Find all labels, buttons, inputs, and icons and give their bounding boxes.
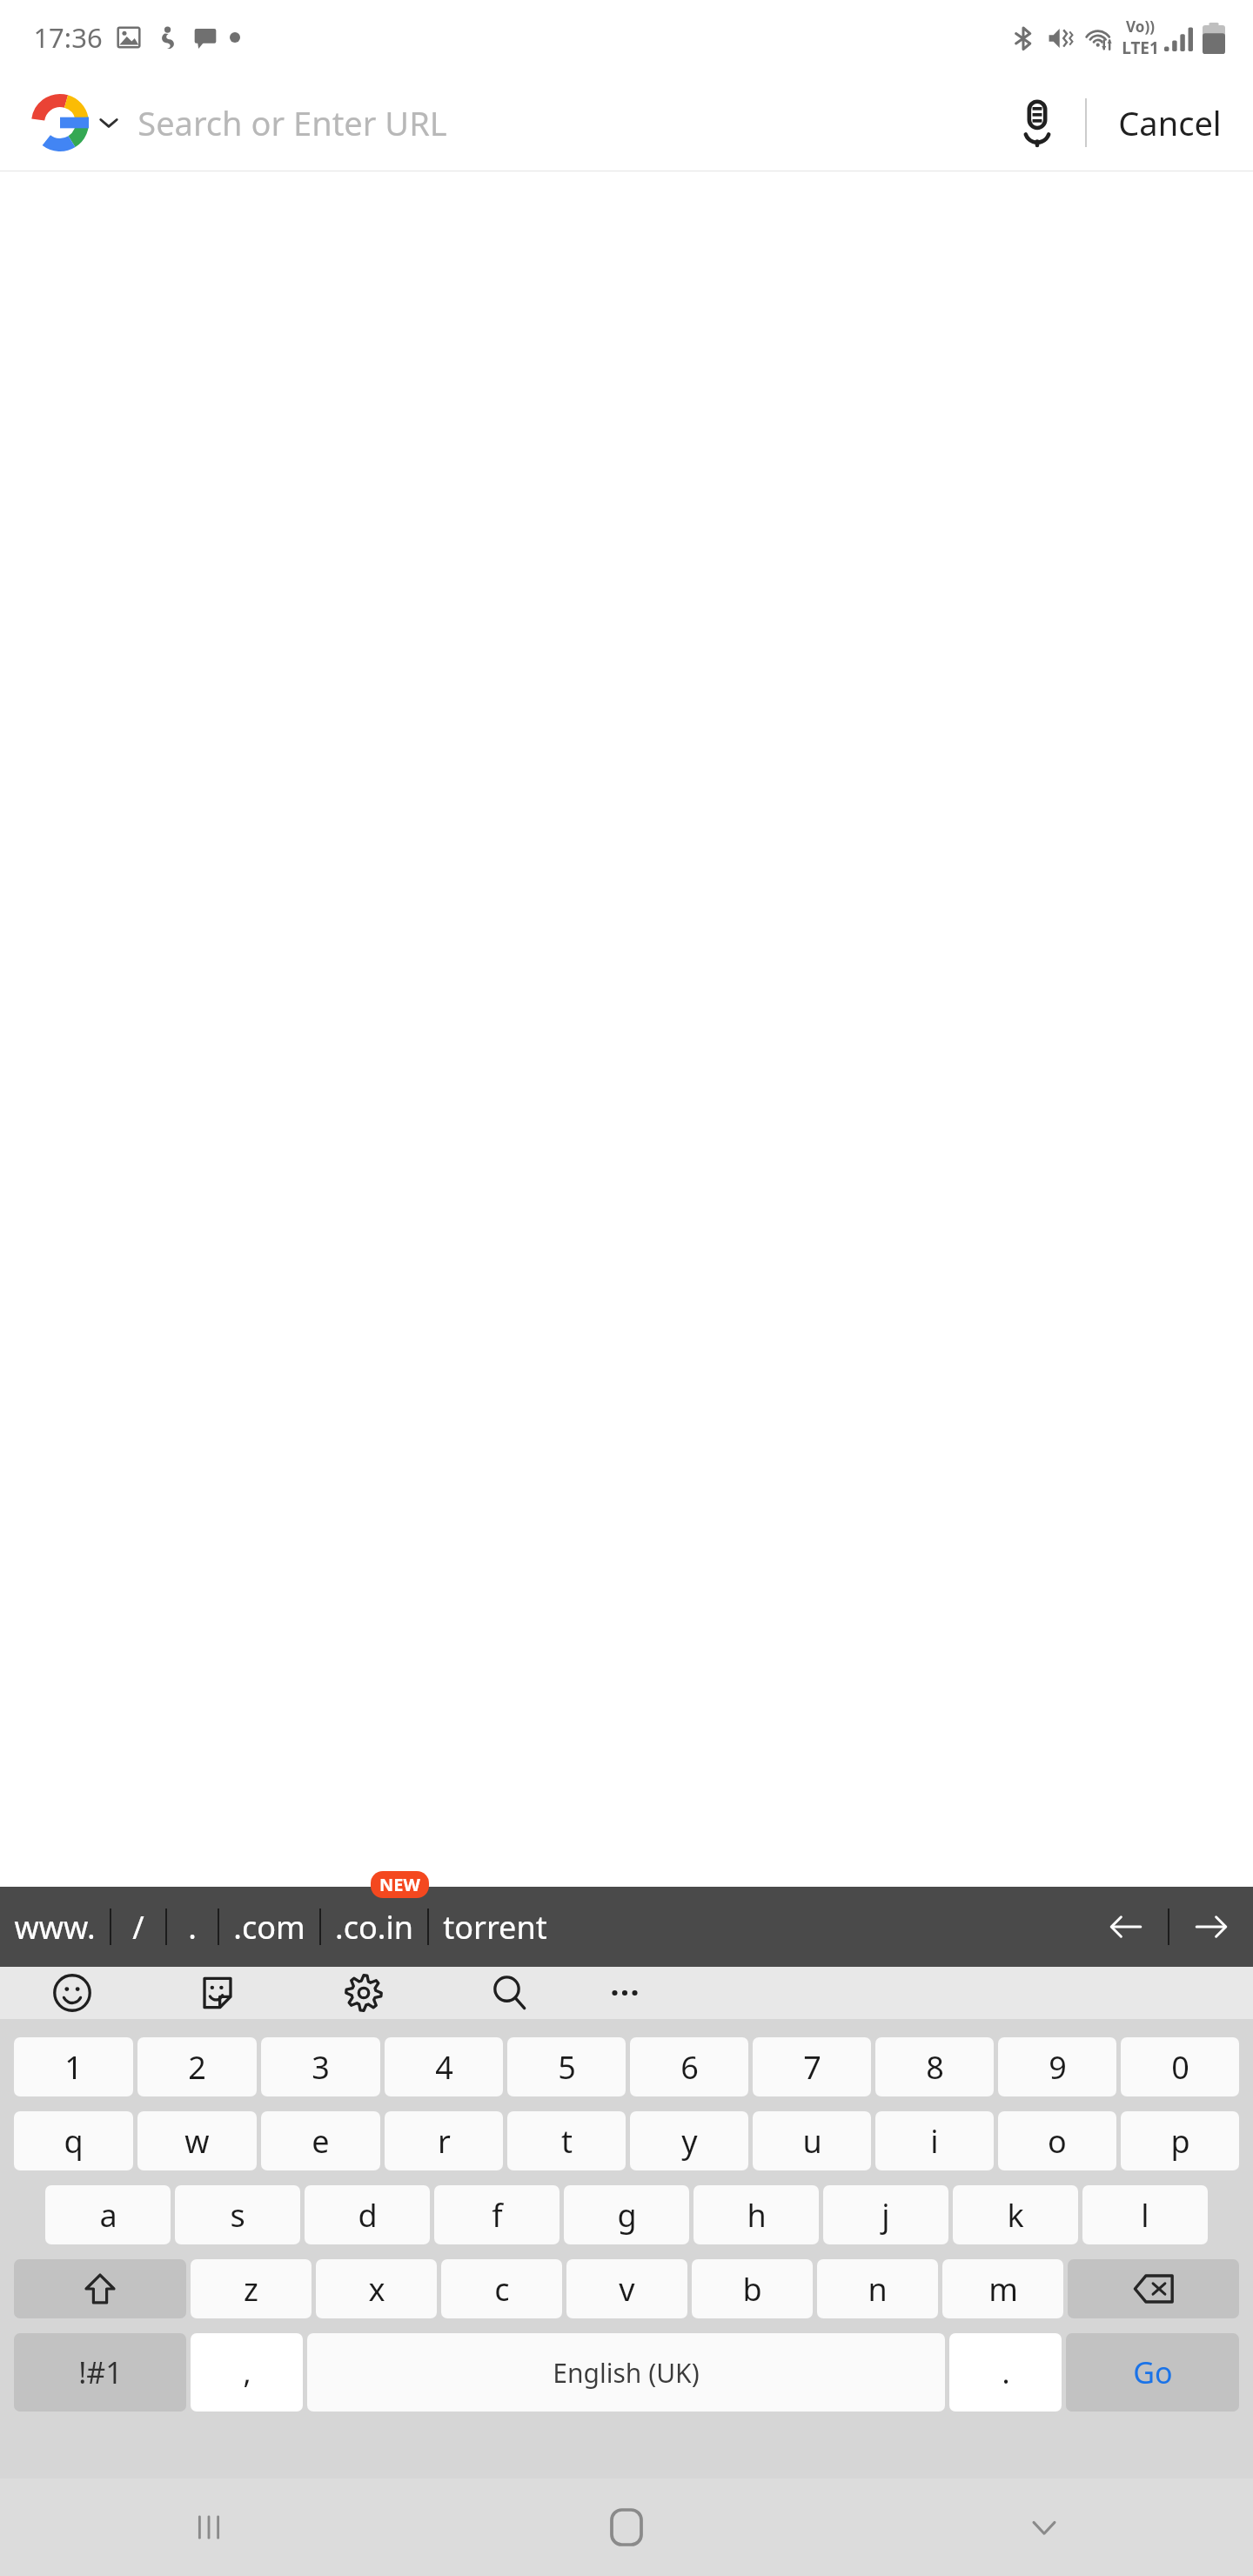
staticText: . <box>1002 2352 1010 2392</box>
button[interactable]: o <box>998 2111 1116 2170</box>
staticText: 17:36 <box>33 19 103 56</box>
button[interactable]: Shift <box>14 2259 186 2318</box>
button[interactable]: 9 <box>998 2037 1116 2096</box>
button[interactable]: Emoji <box>37 1967 107 2019</box>
staticText: 9 <box>1049 2046 1067 2089</box>
button[interactable]: 6 <box>630 2037 748 2096</box>
button[interactable]: 7 <box>753 2037 871 2096</box>
staticText: 1 <box>64 2046 83 2089</box>
button[interactable]: Previous <box>1084 1887 1168 1967</box>
button[interactable]: Cancel <box>1087 75 1253 171</box>
button[interactable]: h <box>694 2185 819 2244</box>
staticText: j <box>881 2194 890 2237</box>
button[interactable]: l <box>1082 2185 1208 2244</box>
button[interactable]: u <box>753 2111 871 2170</box>
button[interactable]: d <box>305 2185 430 2244</box>
button[interactable]: Home <box>418 2479 835 2576</box>
button[interactable]: w <box>137 2111 257 2170</box>
staticText: www. <box>14 1906 96 1949</box>
staticText: .co.in <box>335 1906 413 1949</box>
button[interactable]: z <box>191 2259 312 2318</box>
staticText: m <box>988 2268 1018 2311</box>
staticText: b <box>742 2268 762 2311</box>
staticText: h <box>747 2194 767 2237</box>
staticText: 6 <box>680 2046 699 2089</box>
button[interactable]: , <box>191 2333 303 2412</box>
button[interactable]: i <box>875 2111 994 2170</box>
button[interactable]: r <box>385 2111 503 2170</box>
staticText: e <box>312 2120 330 2163</box>
staticText: Go <box>1133 2352 1173 2392</box>
button[interactable]: Go <box>1066 2333 1239 2412</box>
staticText: d <box>358 2194 378 2237</box>
button[interactable]: English (UK) <box>307 2333 945 2412</box>
button[interactable]: Voice search <box>989 75 1085 171</box>
button[interactable]: 4 <box>385 2037 503 2096</box>
button[interactable]: 3 <box>261 2037 380 2096</box>
button[interactable]: torrent <box>429 1887 561 1967</box>
staticText: English (UK) <box>553 2355 700 2391</box>
staticText: 5 <box>558 2046 576 2089</box>
button[interactable]: m <box>942 2259 1063 2318</box>
staticText: l <box>1141 2194 1149 2237</box>
button[interactable]: t <box>507 2111 626 2170</box>
staticText: s <box>230 2194 245 2237</box>
staticText: 2 <box>188 2046 206 2089</box>
button[interactable]: !#1 <box>14 2333 186 2412</box>
button[interactable]: f <box>434 2185 559 2244</box>
staticText: v <box>619 2268 635 2311</box>
staticText: NEW <box>379 1873 420 1896</box>
button[interactable]: g <box>564 2185 689 2244</box>
button[interactable]: . <box>949 2333 1062 2412</box>
button[interactable]: p <box>1121 2111 1239 2170</box>
button[interactable]: 5 <box>507 2037 626 2096</box>
button[interactable]: www. <box>0 1887 110 1967</box>
staticText: 4 <box>435 2046 453 2089</box>
button[interactable]: n <box>817 2259 938 2318</box>
button[interactable]: y <box>630 2111 748 2170</box>
staticText: x <box>368 2268 385 2311</box>
button[interactable]: Settings <box>329 1967 399 2019</box>
button[interactable]: Search engine: Google <box>0 87 125 158</box>
button[interactable]: Hide keyboard <box>835 2479 1253 2576</box>
button[interactable]: Backspace <box>1068 2259 1239 2318</box>
button[interactable]: x <box>316 2259 437 2318</box>
button[interactable]: c <box>441 2259 562 2318</box>
staticText: 7 <box>803 2046 821 2089</box>
staticText: r <box>438 2120 451 2163</box>
staticText: i <box>930 2120 939 2163</box>
button[interactable]: Search or Enter URL <box>125 75 989 171</box>
button[interactable]: Search <box>475 1967 545 2019</box>
button[interactable]: Recent apps <box>0 2479 418 2576</box>
button[interactable]: e <box>261 2111 380 2170</box>
staticText: Vo)) <box>1126 17 1155 37</box>
staticText: y <box>681 2120 698 2163</box>
button[interactable]: 2 <box>137 2037 257 2096</box>
button[interactable]: . <box>167 1887 218 1967</box>
staticText: torrent <box>443 1906 547 1949</box>
button[interactable]: 0 <box>1121 2037 1239 2096</box>
button[interactable]: 8 <box>875 2037 994 2096</box>
button[interactable]: b <box>692 2259 813 2318</box>
staticText: g <box>617 2194 637 2237</box>
button[interactable]: 1 <box>14 2037 133 2096</box>
button[interactable]: Next <box>1169 1887 1253 1967</box>
button[interactable]: .com <box>219 1887 319 1967</box>
button[interactable]: q <box>14 2111 133 2170</box>
staticText: .com <box>233 1906 305 1949</box>
staticText: t <box>561 2120 573 2163</box>
button[interactable]: Stickers <box>183 1967 252 2019</box>
staticText: p <box>1170 2120 1190 2163</box>
button[interactable]: .co.in <box>321 1887 427 1967</box>
button[interactable]: v <box>566 2259 687 2318</box>
button[interactable]: s <box>175 2185 300 2244</box>
button[interactable]: j <box>823 2185 948 2244</box>
button[interactable]: k <box>953 2185 1078 2244</box>
button[interactable]: More options <box>590 1967 660 2019</box>
button[interactable]: a <box>45 2185 171 2244</box>
staticText: !#1 <box>78 2352 123 2392</box>
staticText: z <box>244 2268 258 2311</box>
staticText: 0 <box>1171 2046 1189 2089</box>
staticText: k <box>1007 2194 1024 2237</box>
button[interactable]: / <box>111 1887 165 1967</box>
